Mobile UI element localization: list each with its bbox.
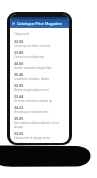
button[interactable]: 32.65 <box>14 131 66 142</box>
staticText: 35.05 <box>14 116 24 121</box>
button[interactable]: 32.50 <box>14 39 66 50</box>
button[interactable]: 34.22 <box>14 105 66 116</box>
staticText: End of list <box>14 142 26 143</box>
staticText: Consectetur adipiscing <box>14 55 44 59</box>
staticText: 34.22 <box>14 105 24 110</box>
staticText: 32.50 <box>14 39 24 44</box>
staticText: 32.65 <box>14 131 24 136</box>
staticText: Category list <box>14 32 30 36</box>
staticText: 33.80 <box>14 50 24 55</box>
staticText: Ut enim ad minim veniam qu <box>14 99 53 103</box>
button[interactable]: 33.44 <box>14 94 66 105</box>
staticText: 34.60 <box>14 61 24 66</box>
button[interactable]: Menu <box>11 21 16 26</box>
staticText: Incididunt ut labore dolore <box>14 77 50 81</box>
staticText: Dolore magna aliqua enim <box>14 88 49 92</box>
button[interactable]: 35.40 <box>14 72 66 83</box>
staticText: Veniam quis nostrud exerc <box>14 110 49 114</box>
button[interactable]: 35.05 <box>14 116 66 131</box>
staticText: 32.95 <box>14 83 24 88</box>
button[interactable]: 34.60 <box>14 61 66 72</box>
staticText: 35.40 <box>14 72 24 77</box>
staticText: Lorem ipsum dolor sit amet <box>14 44 51 48</box>
staticText: Exercitation ullamco laboris nisi ut ali… <box>14 121 66 129</box>
staticText: 33.44 <box>14 94 24 99</box>
staticText: Laboris nisi ut aliquip ex ea <box>14 136 50 140</box>
button[interactable]: 33.80 <box>14 50 66 61</box>
staticText: Catalogue Price Magazine <box>17 21 62 26</box>
staticText: Sed do eiusmod tempor labo <box>14 66 53 70</box>
button[interactable]: 32.95 <box>14 83 66 94</box>
